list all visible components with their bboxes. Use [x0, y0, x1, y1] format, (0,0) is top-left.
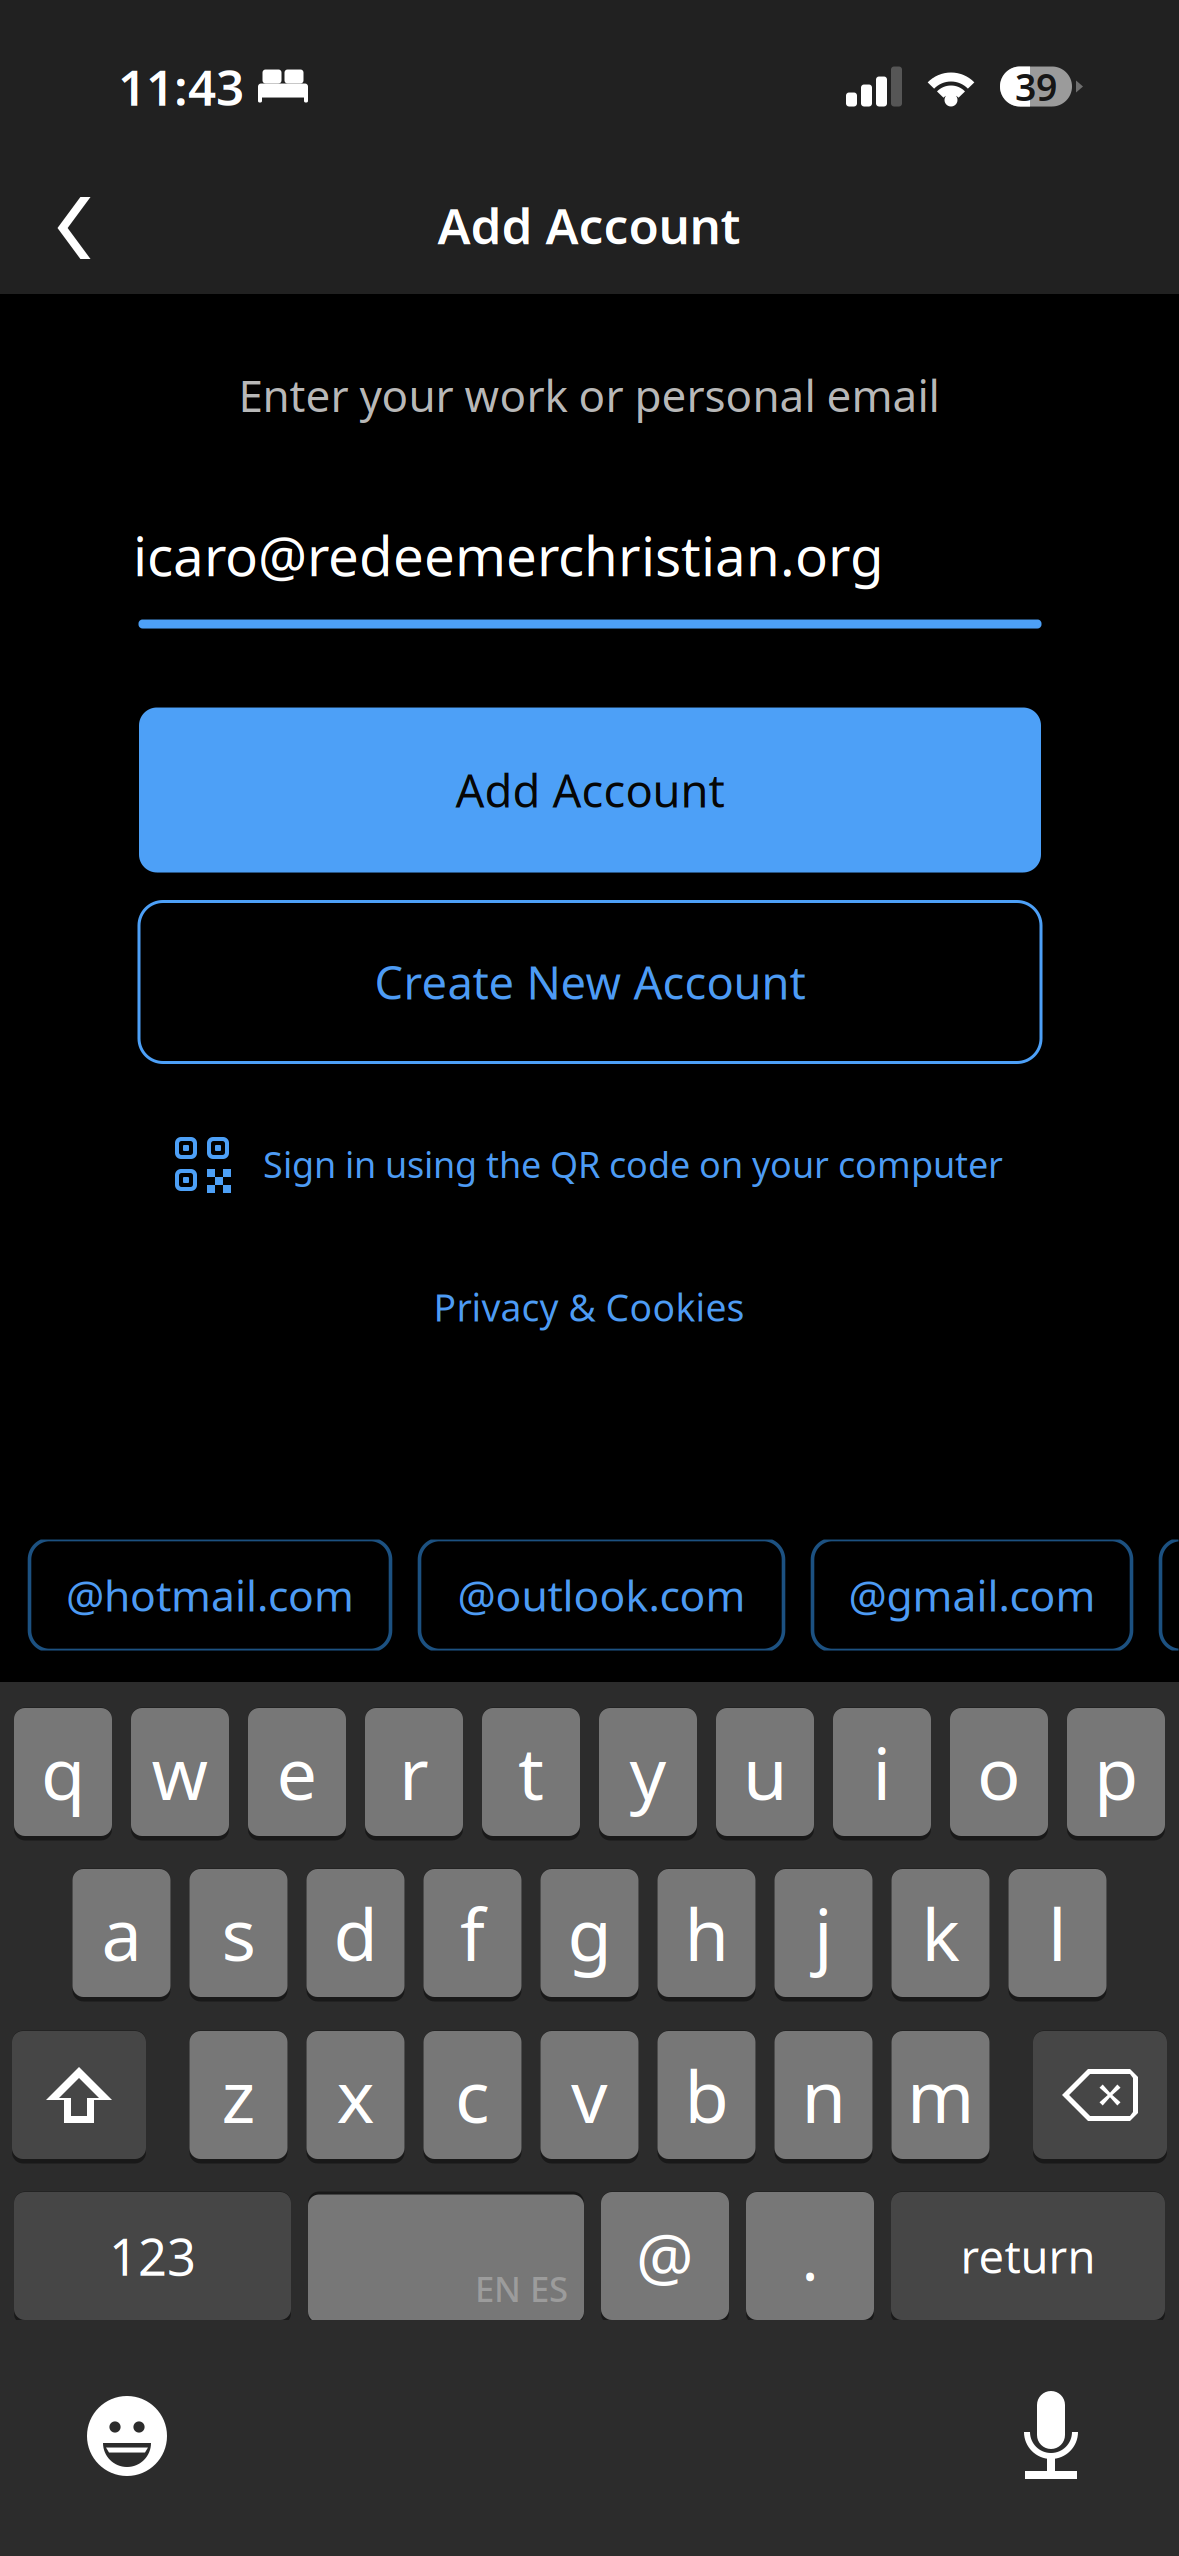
staticText: p: [1094, 1724, 1138, 1820]
button[interactable]: c: [423, 2031, 521, 2159]
button[interactable]: j: [774, 1869, 872, 1997]
button[interactable]: w: [131, 1708, 229, 1836]
staticText: l: [1048, 1885, 1067, 1981]
button[interactable]: @outlook.com: [419, 1539, 783, 1650]
button[interactable]: t: [482, 1708, 580, 1836]
button[interactable]: Sign in using the QR code on your comput…: [175, 1125, 1003, 1203]
staticText: Enter your work or personal email: [238, 366, 939, 424]
staticText: s: [221, 1885, 255, 1981]
staticText: j: [814, 1885, 833, 1981]
staticText: Create New Account: [374, 952, 805, 1012]
staticText: @gmail.com: [848, 1567, 1095, 1623]
button[interactable]: a: [72, 1869, 170, 1997]
staticText: icaro@redeemerchristian.org: [133, 519, 884, 591]
button[interactable]: n: [774, 2031, 872, 2159]
staticText: i: [872, 1724, 891, 1820]
button[interactable]: .: [746, 2192, 874, 2320]
button[interactable]: Privacy & Cookies: [409, 1268, 769, 1346]
staticText: b: [684, 2047, 728, 2143]
staticText: w: [151, 1724, 208, 1820]
button[interactable]: m: [891, 2031, 989, 2159]
staticText: return: [960, 2226, 1095, 2286]
staticText: r: [399, 1724, 429, 1820]
staticText: d: [333, 1885, 377, 1981]
staticText: Privacy & Cookies: [433, 1282, 744, 1332]
button[interactable]: return: [891, 2192, 1165, 2320]
staticText: 11:43: [118, 54, 244, 119]
staticText: m: [907, 2047, 974, 2143]
staticText: u: [743, 1724, 787, 1820]
button[interactable]: @hotmail.com: [29, 1539, 390, 1650]
button[interactable]: y: [599, 1708, 697, 1836]
button[interactable]: @: [601, 2192, 729, 2320]
button[interactable]: r: [365, 1708, 463, 1836]
button[interactable]: p: [1067, 1708, 1165, 1836]
button[interactable]: f: [423, 1869, 521, 1997]
button[interactable]: s: [189, 1869, 287, 1997]
button[interactable]: Create New Account: [139, 901, 1041, 1062]
staticText: 39: [1015, 62, 1057, 111]
staticText: o: [977, 1724, 1021, 1820]
button[interactable]: Delete: [1033, 2031, 1167, 2159]
staticText: c: [455, 2047, 490, 2143]
staticText: @hotmail.com: [66, 1567, 354, 1623]
button[interactable]: @yahoo.com: [1160, 1539, 1179, 1650]
staticText: a: [101, 1885, 141, 1981]
staticText: g: [567, 1885, 611, 1981]
button[interactable]: @gmail.com: [812, 1539, 1131, 1650]
staticText: 123: [109, 2222, 196, 2290]
button[interactable]: g: [540, 1869, 638, 1997]
button[interactable]: e: [248, 1708, 346, 1836]
button[interactable]: b: [657, 2031, 755, 2159]
staticText: Add Account: [455, 760, 724, 820]
button[interactable]: v: [540, 2031, 638, 2159]
staticText: @outlook.com: [457, 1567, 745, 1623]
button[interactable]: o: [950, 1708, 1048, 1836]
button[interactable]: x: [306, 2031, 404, 2159]
button[interactable]: Add Account: [139, 707, 1041, 872]
staticText: x: [336, 2047, 374, 2143]
button[interactable]: z: [189, 2031, 287, 2159]
staticText: h: [684, 1885, 728, 1981]
button[interactable]: h: [657, 1869, 755, 1997]
button[interactable]: Dictate: [996, 2381, 1106, 2491]
staticText: y: [629, 1724, 666, 1820]
staticText: z: [221, 2047, 255, 2143]
staticText: Sign in using the QR code on your comput…: [263, 1140, 1003, 1188]
staticText: t: [518, 1724, 544, 1820]
button[interactable]: space: [308, 2192, 584, 2320]
button[interactable]: k: [891, 1869, 989, 1997]
staticText: q: [41, 1724, 85, 1820]
staticText: @: [636, 2213, 694, 2298]
staticText: n: [801, 2047, 845, 2143]
staticText: e: [276, 1724, 317, 1820]
button[interactable]: Shift: [12, 2031, 146, 2159]
button[interactable]: u: [716, 1708, 814, 1836]
button[interactable]: d: [306, 1869, 404, 1997]
staticText: .: [801, 2213, 818, 2298]
button[interactable]: l: [1008, 1869, 1106, 1997]
staticText: v: [571, 2047, 608, 2143]
staticText: k: [921, 1885, 959, 1981]
button[interactable]: q: [14, 1708, 112, 1836]
staticText: Add Account: [437, 192, 740, 258]
button[interactable]: Emoji: [67, 2376, 187, 2496]
staticText: f: [460, 1885, 485, 1981]
button[interactable]: 123: [14, 2192, 291, 2320]
staticText: EN ES: [475, 2265, 568, 2311]
button[interactable]: i: [833, 1708, 931, 1836]
button[interactable]: Back: [18, 173, 130, 283]
